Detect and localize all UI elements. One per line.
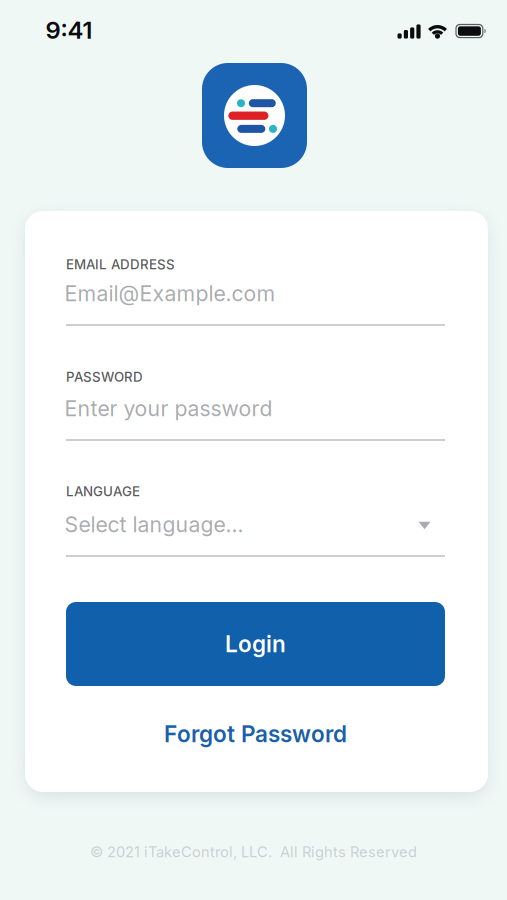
staticText: Email@Example.com <box>64 281 275 306</box>
staticText: EMAIL ADDRESS <box>66 257 175 272</box>
button[interactable]: Login <box>66 602 445 686</box>
button[interactable]: Select language... <box>64 509 445 539</box>
staticText: 9:41 <box>45 16 92 44</box>
staticText: LANGUAGE <box>66 484 140 499</box>
textField[interactable] <box>66 290 445 315</box>
staticText: PASSWORD <box>66 369 143 385</box>
staticText <box>66 290 72 315</box>
staticText: Enter your password <box>64 396 272 421</box>
textField[interactable] <box>66 405 445 430</box>
button[interactable]: Forgot Password <box>66 717 445 751</box>
staticText: © 2021 iTakeControl, LLC. All Rights Res… <box>90 843 417 861</box>
staticText: Select language... <box>64 512 243 537</box>
staticText: Forgot Password <box>164 721 347 747</box>
staticText: Login <box>225 631 286 657</box>
staticText <box>66 405 72 430</box>
